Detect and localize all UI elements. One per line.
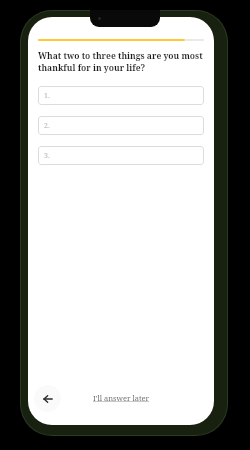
staticText: I'll answer later — [93, 393, 150, 403]
staticText: What two to three things are you most th… — [38, 50, 204, 74]
staticText: 3. — [44, 151, 50, 161]
button[interactable]: Back — [34, 385, 61, 412]
button[interactable]: 3. — [38, 146, 204, 165]
button[interactable]: 1. — [38, 86, 204, 105]
staticText: 2. — [44, 121, 50, 131]
button[interactable]: I'll answer later — [93, 393, 150, 403]
staticText: 1. — [44, 91, 50, 101]
button[interactable]: 2. — [38, 116, 204, 135]
